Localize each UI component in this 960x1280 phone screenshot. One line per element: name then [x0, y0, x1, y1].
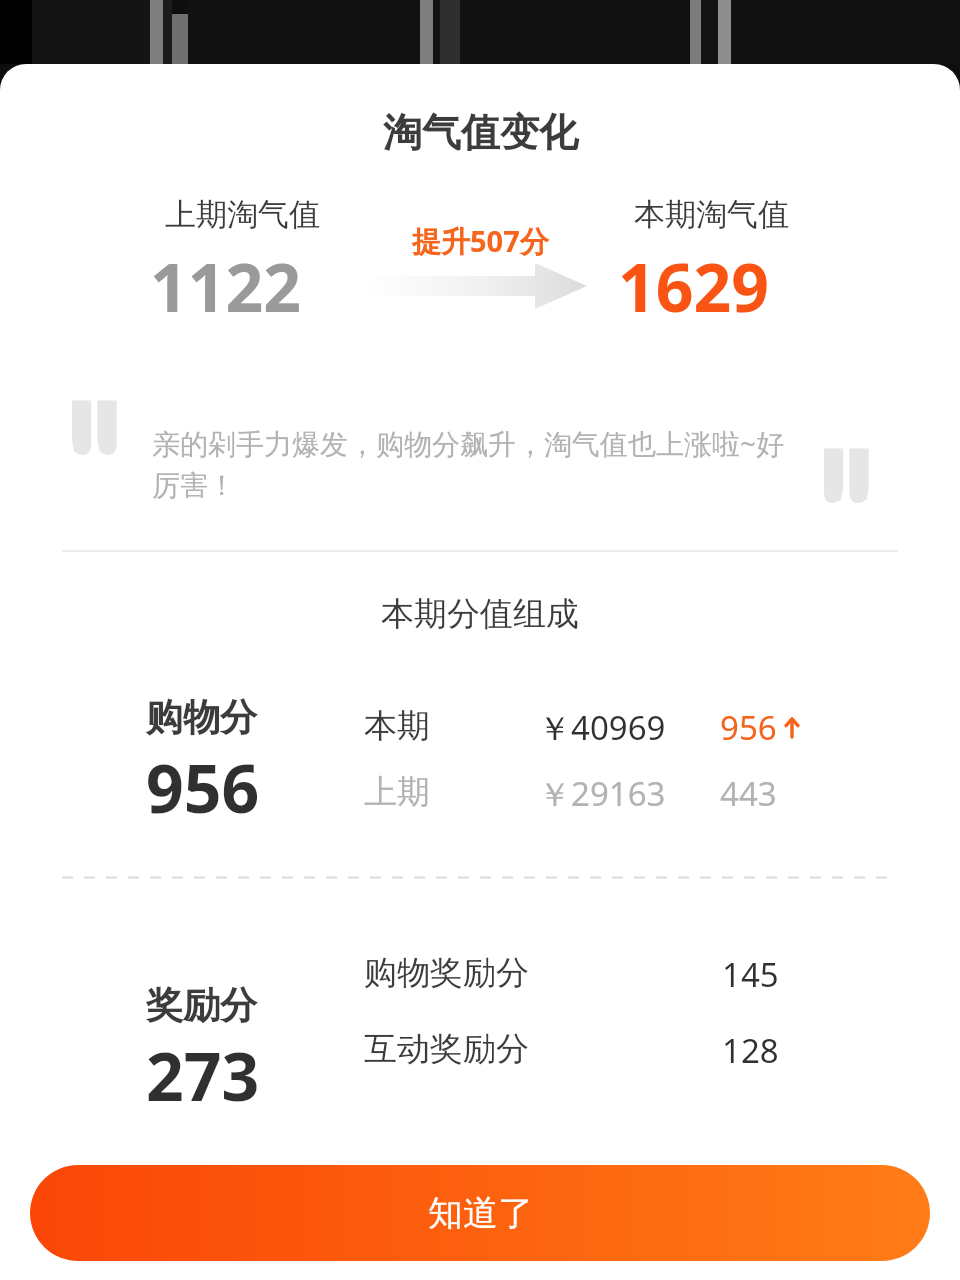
staticText: 956: [146, 742, 260, 832]
staticText: 亲的剁手力爆发，购物分飙升，淘气值也上涨啦~好: [152, 424, 785, 462]
staticText: 奖励分: [146, 982, 257, 1029]
staticText: 上期: [364, 771, 430, 813]
staticText: 厉害！: [152, 468, 236, 503]
staticText: ￥40969: [538, 705, 666, 750]
staticText: 上期淘气值: [165, 195, 320, 234]
staticText: 443: [720, 771, 777, 816]
staticText: 本期: [364, 705, 430, 747]
staticText: 互动奖励分: [364, 1028, 529, 1070]
staticText: 1122: [150, 241, 302, 331]
staticText: ￥29163: [538, 771, 666, 816]
staticText: 购物奖励分: [364, 952, 529, 994]
staticText: 1629: [618, 241, 770, 331]
staticText: 128: [722, 1028, 779, 1073]
staticText: 提升507分: [412, 221, 549, 261]
staticText: 956: [720, 705, 777, 750]
staticText: 知道了: [428, 1191, 533, 1235]
staticText: 145: [722, 952, 779, 997]
button[interactable]: 知道了: [30, 1165, 930, 1261]
staticText: 本期分值组成: [381, 593, 579, 635]
staticText: 本期淘气值: [634, 195, 789, 234]
staticText: 273: [146, 1030, 260, 1120]
staticText: 淘气值变化: [383, 108, 578, 157]
staticText: 购物分: [146, 694, 257, 741]
